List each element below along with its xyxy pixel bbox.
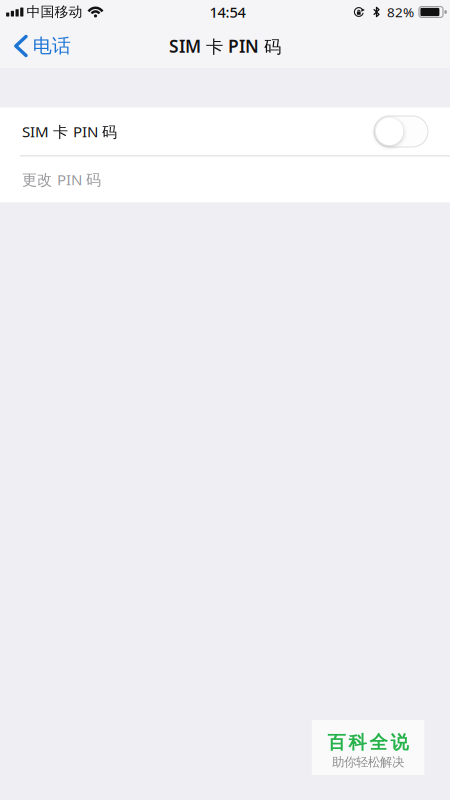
button[interactable]: SIM 卡 PIN 码 xyxy=(374,116,428,147)
staticText: 82% xyxy=(387,3,414,21)
button[interactable]: 更改 PIN 码 xyxy=(0,156,450,202)
staticText: 百科全说 xyxy=(328,731,409,754)
staticText: SIM 卡 PIN 码 xyxy=(169,34,281,58)
staticText: 助你轻松解决 xyxy=(332,754,404,770)
staticText: 14:54 xyxy=(210,2,246,22)
staticText: 中国移动 xyxy=(26,3,82,21)
staticText: 更改 PIN 码 xyxy=(22,169,101,189)
staticText: 电话 xyxy=(33,34,71,58)
button[interactable]: 电话 xyxy=(0,26,81,66)
staticText: SIM 卡 PIN 码 xyxy=(22,121,117,142)
